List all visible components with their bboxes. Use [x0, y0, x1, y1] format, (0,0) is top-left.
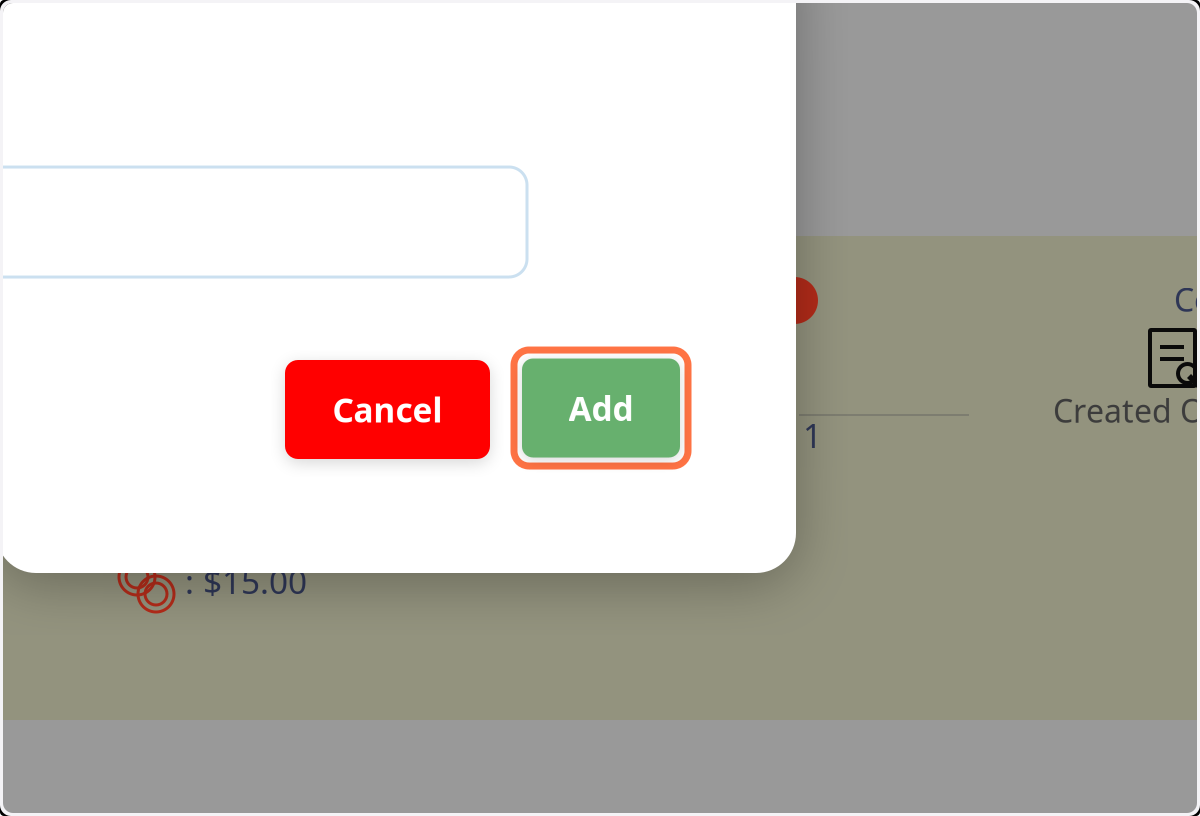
staticText: Created O [1053, 389, 1200, 431]
button[interactable]: View order details [1150, 330, 1200, 392]
button[interactable]: Cancel [285, 360, 490, 459]
button[interactable]: Co [1174, 278, 1200, 320]
staticText: Cancel [332, 387, 442, 432]
staticText: Add [568, 386, 633, 430]
button[interactable]: Remove item [771, 277, 818, 324]
staticText: 1 [803, 413, 822, 457]
staticText: : $15.00 [185, 559, 307, 603]
staticText: Co [1174, 278, 1200, 320]
button[interactable]: Add [510, 346, 692, 470]
